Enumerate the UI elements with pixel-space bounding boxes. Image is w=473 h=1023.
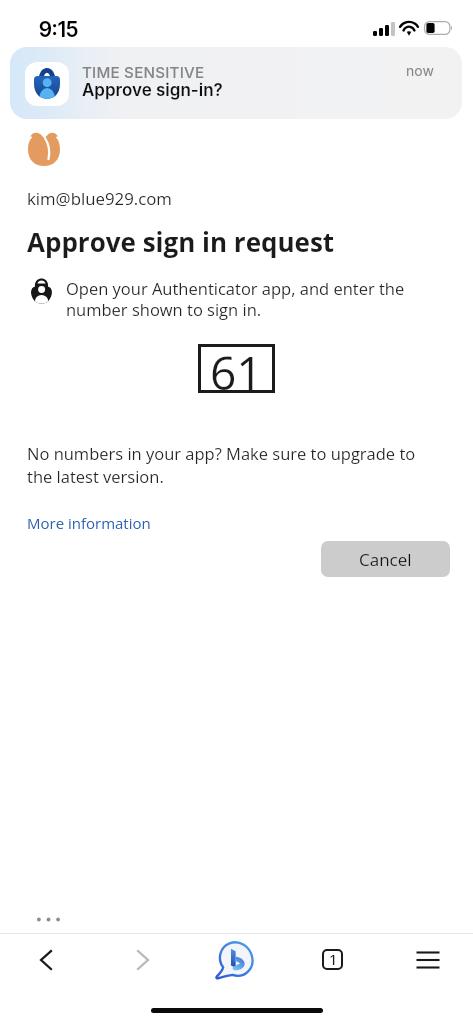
staticText: Approve sign-in? [82,80,223,101]
staticText: No numbers in your app? Make sure to upg… [27,442,437,488]
staticText: TIME SENSITIVE [82,63,205,81]
staticText: kim@blue929.com [27,187,172,210]
button[interactable]: Back [20,934,71,985]
staticText: Open your Authenticator app, and enter t… [66,277,448,321]
button[interactable]: Cancel [321,541,450,577]
button[interactable]: Tabs, 1 open [307,934,358,985]
button[interactable]: More information [27,513,151,533]
button[interactable]: TIME SENSITIVE [10,47,462,119]
button[interactable]: Menu [402,934,453,985]
button[interactable]: Bing chat [209,934,260,985]
staticText: Approve sign in request [27,224,335,259]
staticText: 61 [210,341,263,390]
staticText: now [406,62,434,79]
staticText: 9:15 [39,17,79,42]
staticText: 1 [330,952,336,968]
button[interactable]: Forward [117,934,168,985]
staticText: More information [27,513,151,533]
staticText: Cancel [359,548,412,571]
